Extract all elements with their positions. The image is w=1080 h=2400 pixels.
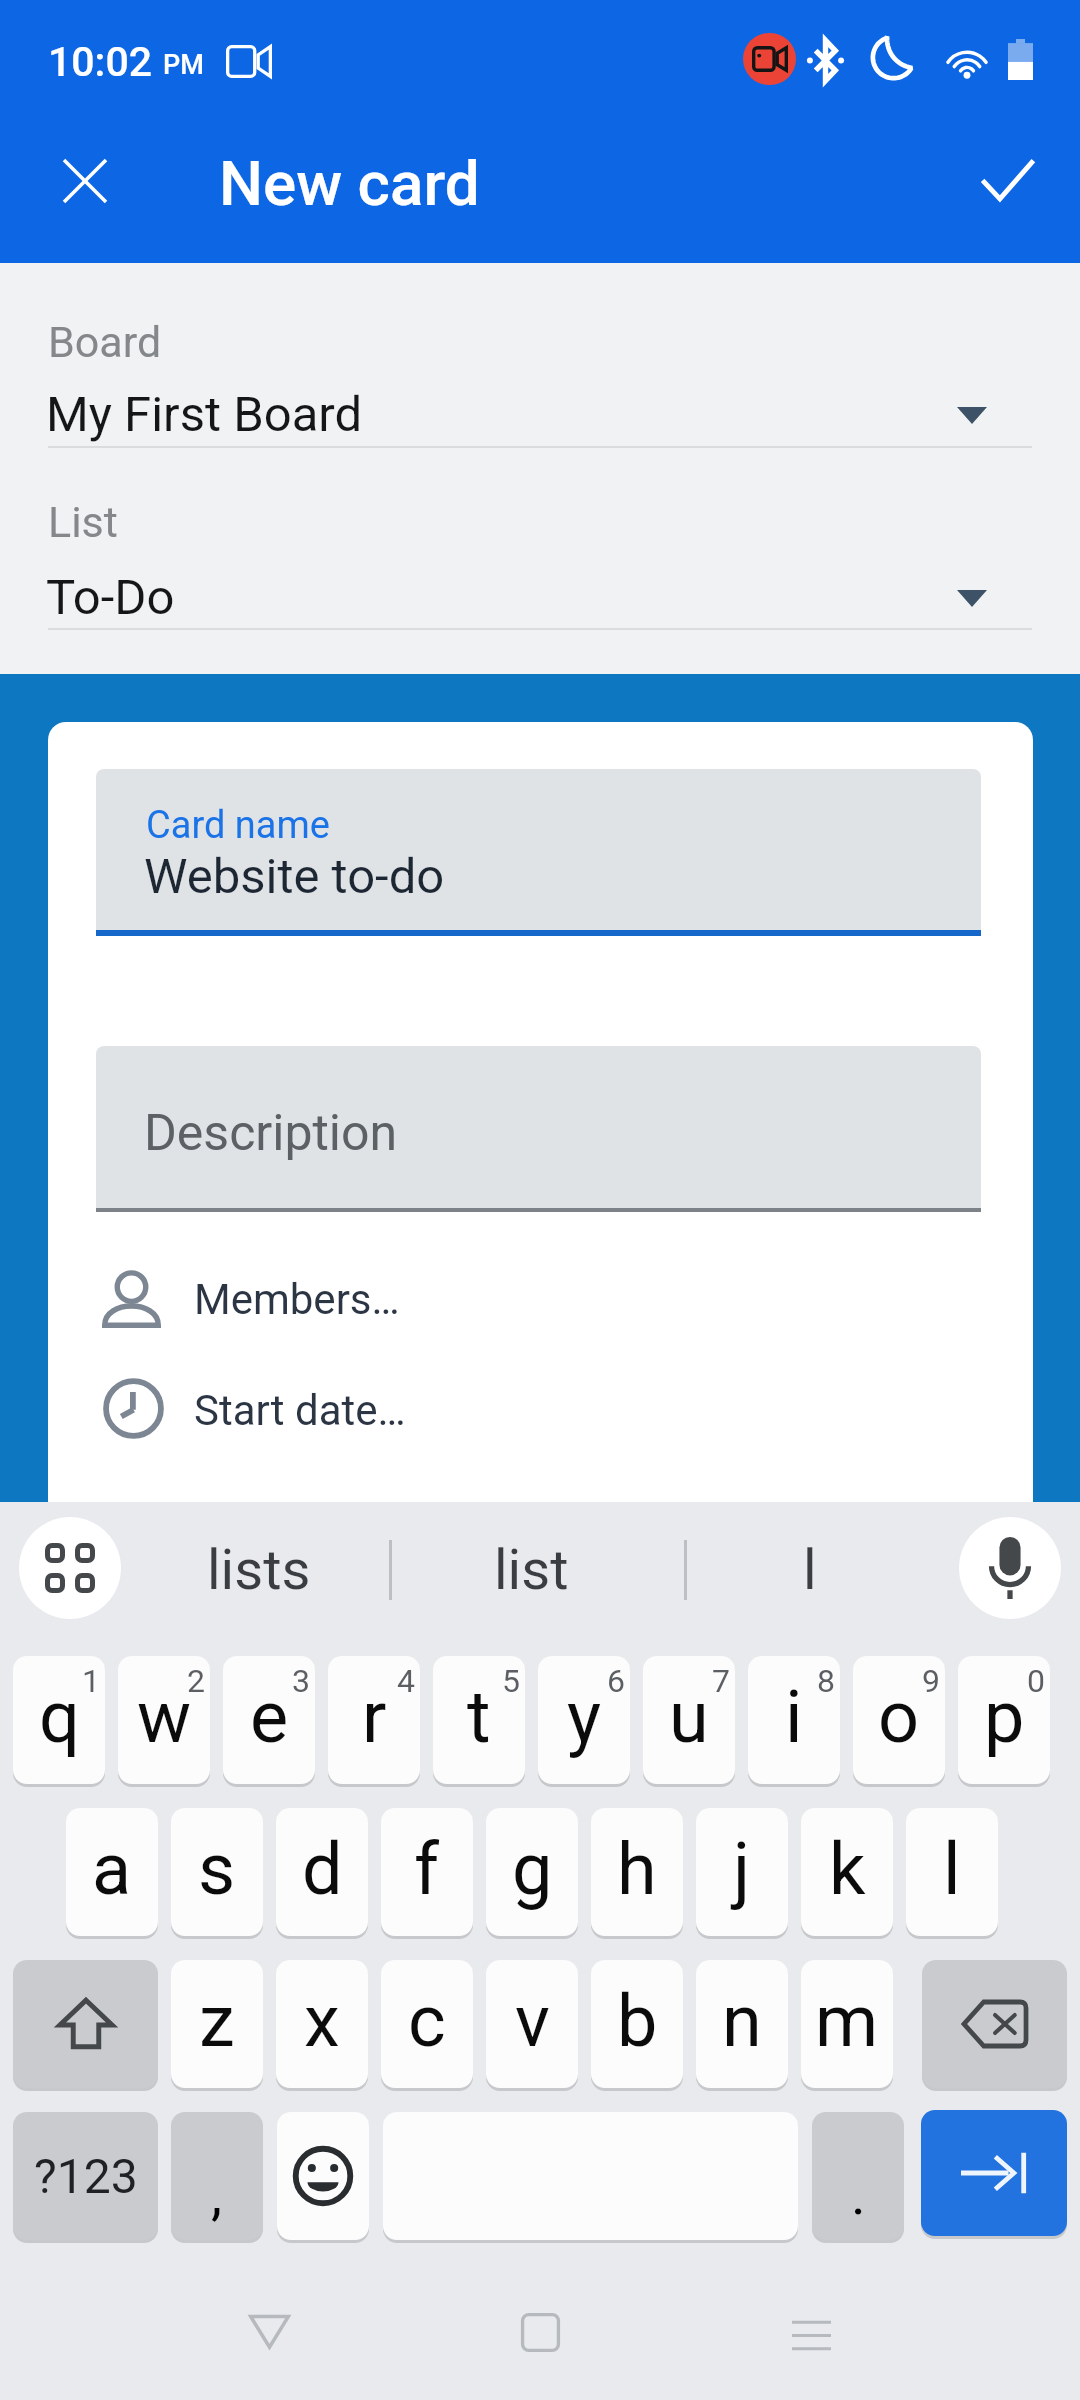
staticText: m <box>815 1979 879 2063</box>
button[interactable]: list <box>454 1510 609 1630</box>
button[interactable]: a <box>66 1808 158 1936</box>
button[interactable]: Keyboard toolbar <box>19 1517 121 1619</box>
staticText: 7 <box>712 1662 730 1700</box>
staticText: s <box>198 1827 236 1911</box>
button[interactable]: Members… <box>48 1254 1033 1340</box>
button[interactable]: Close <box>37 133 133 229</box>
staticText: b <box>617 1979 658 2063</box>
button[interactable]: s <box>171 1808 263 1936</box>
button[interactable]: t <box>433 1656 525 1784</box>
button[interactable]: ?123 <box>13 2112 158 2240</box>
staticText: 9 <box>922 1662 940 1700</box>
button[interactable]: Backspace <box>922 1960 1067 2088</box>
staticText: Board <box>48 317 162 367</box>
staticText: 5 <box>502 1662 520 1700</box>
staticText: 4 <box>397 1662 415 1700</box>
staticText: . <box>851 2162 866 2228</box>
staticText: ?123 <box>34 2148 138 2204</box>
button[interactable]: w <box>118 1656 210 1784</box>
staticText: x <box>304 1979 340 2063</box>
staticText: 2 <box>187 1662 205 1700</box>
staticText: 8 <box>817 1662 835 1700</box>
staticText: u <box>669 1675 709 1759</box>
button[interactable]: p <box>958 1656 1050 1784</box>
staticText: y <box>567 1675 602 1759</box>
button[interactable]: Next <box>921 2110 1067 2236</box>
button[interactable]: z <box>171 1960 263 2088</box>
staticText: a <box>92 1827 132 1911</box>
button[interactable]: Board <box>0 305 1080 460</box>
staticText: w <box>137 1675 192 1759</box>
button[interactable]: Shift <box>13 1960 158 2088</box>
staticText: i <box>785 1675 803 1759</box>
button[interactable]: Description <box>96 1046 981 1208</box>
staticText: My First Board <box>46 386 363 443</box>
button[interactable]: u <box>643 1656 735 1784</box>
staticText: g <box>512 1827 553 1911</box>
button[interactable]: Home <box>485 2277 595 2387</box>
staticText: 3 <box>292 1662 310 1700</box>
staticText: To-Do <box>46 569 175 626</box>
staticText: Card name <box>146 803 330 848</box>
staticText: q <box>39 1675 80 1759</box>
staticText: 1 <box>82 1662 100 1700</box>
button[interactable]: r <box>328 1656 420 1784</box>
button[interactable]: i <box>748 1656 840 1784</box>
staticText: v <box>515 1979 550 2063</box>
button[interactable]: c <box>381 1960 473 2088</box>
button[interactable]: , <box>171 2112 263 2240</box>
button[interactable]: h <box>591 1808 683 1936</box>
staticText: l <box>943 1827 961 1911</box>
staticText: lists <box>207 1537 311 1603</box>
button[interactable]: n <box>696 1960 788 2088</box>
button[interactable]: Back <box>214 2275 324 2385</box>
button[interactable]: Save <box>960 131 1056 227</box>
button[interactable]: Card name <box>96 769 981 930</box>
button[interactable]: l <box>763 1510 857 1630</box>
button[interactable]: y <box>538 1656 630 1784</box>
staticText: d <box>302 1827 343 1911</box>
staticText: n <box>722 1979 762 2063</box>
staticText: list <box>494 1537 569 1603</box>
button[interactable]: lists <box>167 1510 351 1630</box>
staticText: Members… <box>194 1275 400 1324</box>
button[interactable]: . <box>812 2112 904 2240</box>
button[interactable]: Recents <box>756 2280 866 2390</box>
button[interactable]: e <box>223 1656 315 1784</box>
button[interactable]: Voice input <box>959 1517 1061 1619</box>
staticText: k <box>829 1827 866 1911</box>
staticText: o <box>878 1675 920 1759</box>
staticText: Website to-do <box>144 848 445 905</box>
button[interactable]: Emoji <box>277 2112 369 2240</box>
button[interactable]: g <box>486 1808 578 1936</box>
staticText: 10:02 <box>48 38 153 86</box>
button[interactable]: f <box>381 1808 473 1936</box>
staticText: 6 <box>607 1662 625 1700</box>
staticText: e <box>250 1675 289 1759</box>
staticText: r <box>362 1675 387 1759</box>
staticText: p <box>984 1675 1025 1759</box>
staticText: Description <box>144 1104 398 1163</box>
button[interactable]: List <box>0 485 1080 642</box>
staticText: Start date… <box>194 1386 406 1435</box>
button[interactable]: j <box>696 1808 788 1936</box>
button[interactable]: o <box>853 1656 945 1784</box>
button[interactable]: m <box>801 1960 893 2088</box>
button[interactable]: q <box>13 1656 105 1784</box>
staticText: h <box>617 1827 657 1911</box>
button[interactable]: k <box>801 1808 893 1936</box>
button[interactable]: b <box>591 1960 683 2088</box>
button[interactable]: l <box>906 1808 998 1936</box>
staticText: l <box>803 1537 817 1603</box>
staticText: 0 <box>1027 1662 1045 1700</box>
button[interactable]: v <box>486 1960 578 2088</box>
button[interactable]: x <box>276 1960 368 2088</box>
staticText: New card <box>219 147 480 220</box>
staticText: z <box>199 1979 235 2063</box>
staticText: j <box>733 1827 751 1911</box>
staticText: f <box>414 1827 440 1911</box>
button[interactable]: Start date… <box>48 1365 1033 1451</box>
staticText: , <box>211 2162 223 2228</box>
button[interactable]: d <box>276 1808 368 1936</box>
